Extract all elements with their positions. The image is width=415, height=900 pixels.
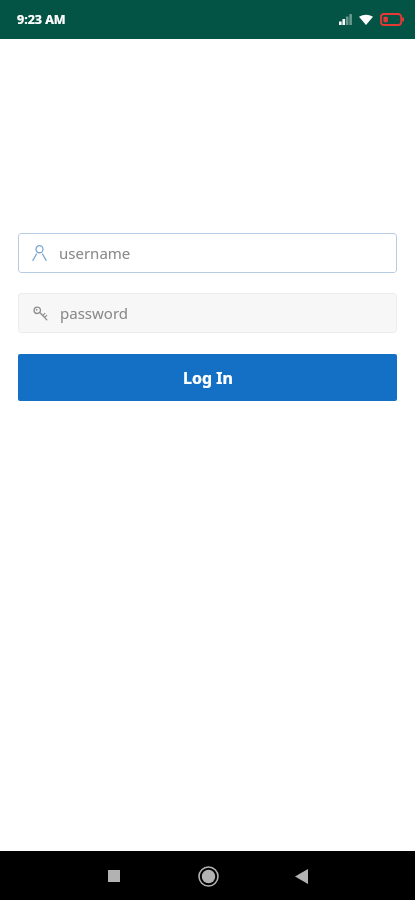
- button[interactable]: password: [18, 293, 397, 333]
- button[interactable]: Recent apps: [92, 854, 136, 898]
- staticText: password: [60, 303, 128, 323]
- button[interactable]: Home: [186, 854, 230, 898]
- staticText: 9:23 AM: [17, 11, 66, 28]
- button[interactable]: username: [18, 233, 397, 273]
- staticText: username: [59, 243, 131, 263]
- staticText: Log In: [183, 367, 233, 389]
- button[interactable]: Log In: [18, 354, 397, 401]
- button[interactable]: Back: [279, 854, 323, 898]
